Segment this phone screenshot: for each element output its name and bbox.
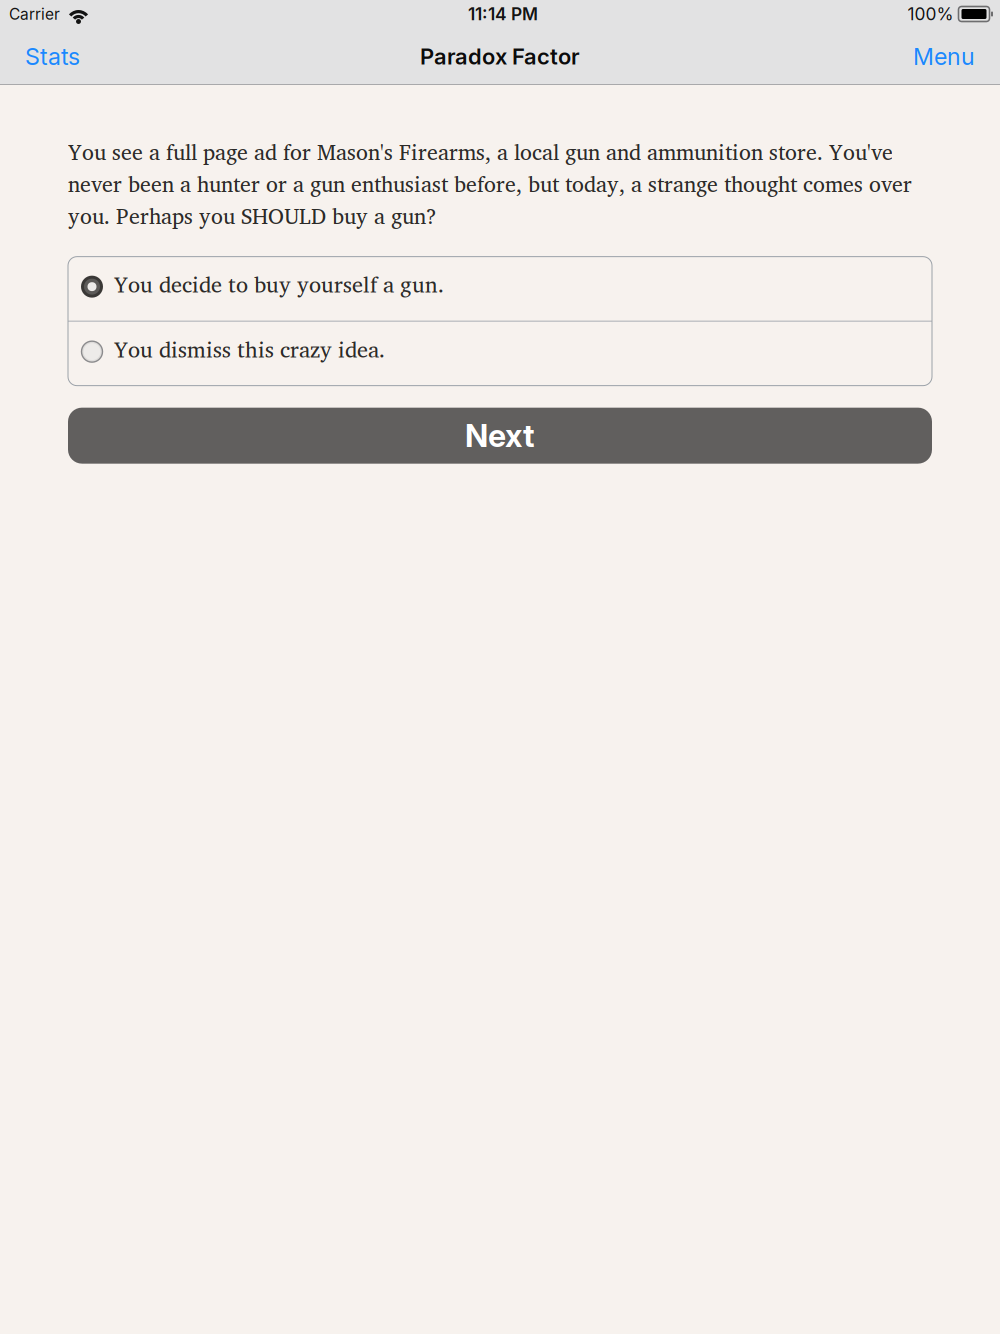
button[interactable]: Stats: [15, 34, 90, 79]
button[interactable]: You decide to buy yourself a gun.: [68, 257, 932, 321]
staticText: 100%: [907, 3, 953, 24]
staticText: Menu: [913, 42, 975, 71]
staticText: You decide to buy yourself a gun.: [114, 266, 444, 302]
staticText: You dismiss this crazy idea.: [114, 331, 385, 367]
staticText: Stats: [25, 42, 80, 71]
staticText: Next: [465, 417, 535, 455]
staticText: You see a full page ad for Mason's Firea…: [68, 134, 912, 234]
staticText: Carrier: [9, 5, 60, 23]
button[interactable]: Menu: [903, 34, 985, 79]
staticText: 11:14 PM: [468, 3, 538, 24]
staticText: Paradox Factor: [420, 43, 580, 70]
button[interactable]: You dismiss this crazy idea.: [68, 322, 932, 386]
button[interactable]: Next: [68, 408, 932, 464]
